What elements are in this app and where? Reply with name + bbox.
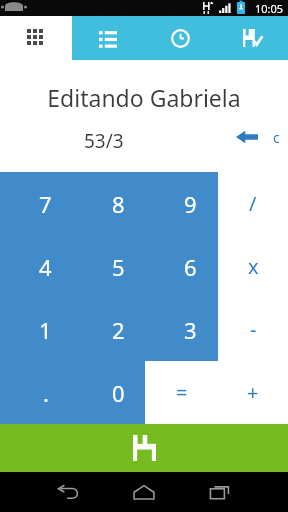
- staticText: 3: [184, 315, 197, 345]
- button[interactable]: x: [218, 235, 288, 298]
- button[interactable]: 9: [145, 172, 218, 235]
- staticText: 2: [112, 315, 125, 345]
- staticText: 5: [112, 252, 125, 282]
- button[interactable]: 1: [0, 298, 73, 361]
- button[interactable]: 3: [145, 298, 218, 361]
- staticText: 8: [112, 189, 125, 219]
- button[interactable]: +: [218, 361, 288, 424]
- button[interactable]: /: [218, 172, 288, 235]
- button[interactable]: Backspace: [230, 122, 264, 152]
- staticText: +: [247, 379, 259, 406]
- button[interactable]: 4: [0, 235, 73, 298]
- button[interactable]: Keypad: [0, 16, 72, 60]
- staticText: c: [273, 128, 280, 147]
- staticText: .: [43, 378, 49, 408]
- button[interactable]: Recents: [200, 472, 240, 512]
- button[interactable]: .: [0, 361, 73, 424]
- button[interactable]: Home: [124, 472, 164, 512]
- button[interactable]: Save: [0, 424, 288, 472]
- staticText: Editando Gabriela: [47, 82, 241, 113]
- staticText: -: [250, 316, 257, 343]
- staticText: =: [176, 379, 188, 406]
- button[interactable]: 2: [73, 298, 146, 361]
- staticText: x: [248, 253, 259, 280]
- staticText: 9: [184, 189, 197, 219]
- button[interactable]: Back: [48, 472, 88, 512]
- button[interactable]: 8: [73, 172, 146, 235]
- button[interactable]: -: [218, 298, 288, 361]
- button[interactable]: 5: [73, 235, 146, 298]
- button[interactable]: Saved: [216, 16, 288, 60]
- staticText: 4: [39, 252, 52, 282]
- staticText: /: [249, 190, 257, 217]
- staticText: 7: [39, 189, 52, 219]
- button[interactable]: 0: [73, 361, 146, 424]
- button[interactable]: c: [264, 122, 288, 152]
- staticText: 53/3: [84, 128, 124, 154]
- staticText: 0: [112, 378, 125, 408]
- button[interactable]: 6: [145, 235, 218, 298]
- staticText: 10:05: [255, 1, 284, 16]
- staticText: 1: [39, 315, 52, 345]
- button[interactable]: 7: [0, 172, 73, 235]
- button[interactable]: =: [145, 361, 218, 424]
- button[interactable]: List: [72, 16, 144, 60]
- button[interactable]: Recent: [144, 16, 216, 60]
- staticText: 6: [184, 252, 197, 282]
